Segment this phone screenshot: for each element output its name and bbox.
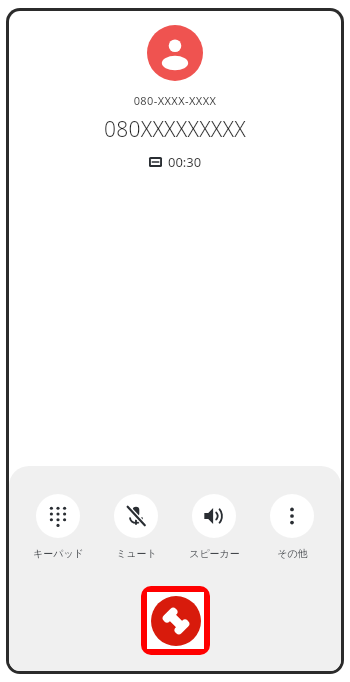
staticText: 00:30 <box>168 153 202 171</box>
other: More options <box>270 494 314 538</box>
staticText: 080XXXXXXXXX <box>9 115 341 144</box>
other: Speaker <box>192 494 236 538</box>
staticText: スピーカー <box>189 547 240 560</box>
staticText: ミュート <box>116 547 157 560</box>
staticText: キーパッド <box>33 547 84 560</box>
button[interactable]: Keypad <box>21 492 95 562</box>
other: Keypad <box>36 494 80 538</box>
button[interactable]: End call <box>147 592 204 649</box>
other: Mute <box>114 494 158 538</box>
button[interactable]: Mute <box>99 492 173 562</box>
staticText: その他 <box>277 547 308 560</box>
button[interactable]: Speaker <box>177 492 251 562</box>
staticText: 080-XXXX-XXXX <box>9 93 341 108</box>
button[interactable]: More options <box>255 492 329 562</box>
